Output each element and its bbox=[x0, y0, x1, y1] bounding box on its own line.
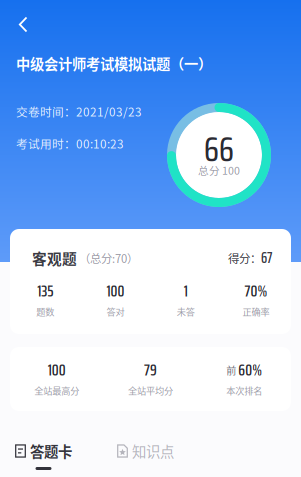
staticText: 67 bbox=[261, 246, 272, 270]
staticText: 本次排名 bbox=[226, 384, 262, 397]
staticText: 知识点 bbox=[132, 441, 174, 461]
staticText: 考试用时：00:10:23 bbox=[16, 135, 124, 152]
button[interactable]: 答题卡 bbox=[5, 442, 82, 472]
staticText: 1 bbox=[184, 278, 188, 304]
staticText: 客观题 bbox=[32, 247, 77, 269]
staticText: 70% bbox=[244, 278, 267, 304]
staticText: 66 bbox=[204, 121, 234, 177]
staticText: 100 bbox=[106, 278, 124, 304]
button[interactable]: 知识点 bbox=[107, 442, 184, 472]
staticText: 交卷时间：2021/03/23 bbox=[16, 103, 142, 120]
staticText: 题数 bbox=[36, 305, 54, 318]
staticText: 前 bbox=[226, 363, 236, 377]
staticText: 135 bbox=[37, 278, 53, 304]
staticText: 60% bbox=[238, 357, 262, 383]
staticText: 全站平均分 bbox=[128, 384, 173, 397]
staticText: 正确率 bbox=[242, 305, 269, 318]
staticText: 总分 100 bbox=[198, 162, 240, 178]
staticText: 100 bbox=[48, 357, 66, 383]
staticText: 中级会计师考试模拟试题（一） bbox=[16, 53, 212, 74]
staticText: 全站最高分 bbox=[34, 384, 79, 397]
button[interactable]: 返回 bbox=[8, 7, 38, 42]
staticText: 79 bbox=[144, 357, 157, 383]
staticText: 答对 bbox=[106, 305, 124, 318]
staticText: （总分:70） bbox=[79, 250, 138, 266]
staticText: 得分： bbox=[228, 250, 261, 266]
staticText: 答题卡 bbox=[30, 441, 72, 461]
staticText: 未答 bbox=[177, 305, 195, 318]
